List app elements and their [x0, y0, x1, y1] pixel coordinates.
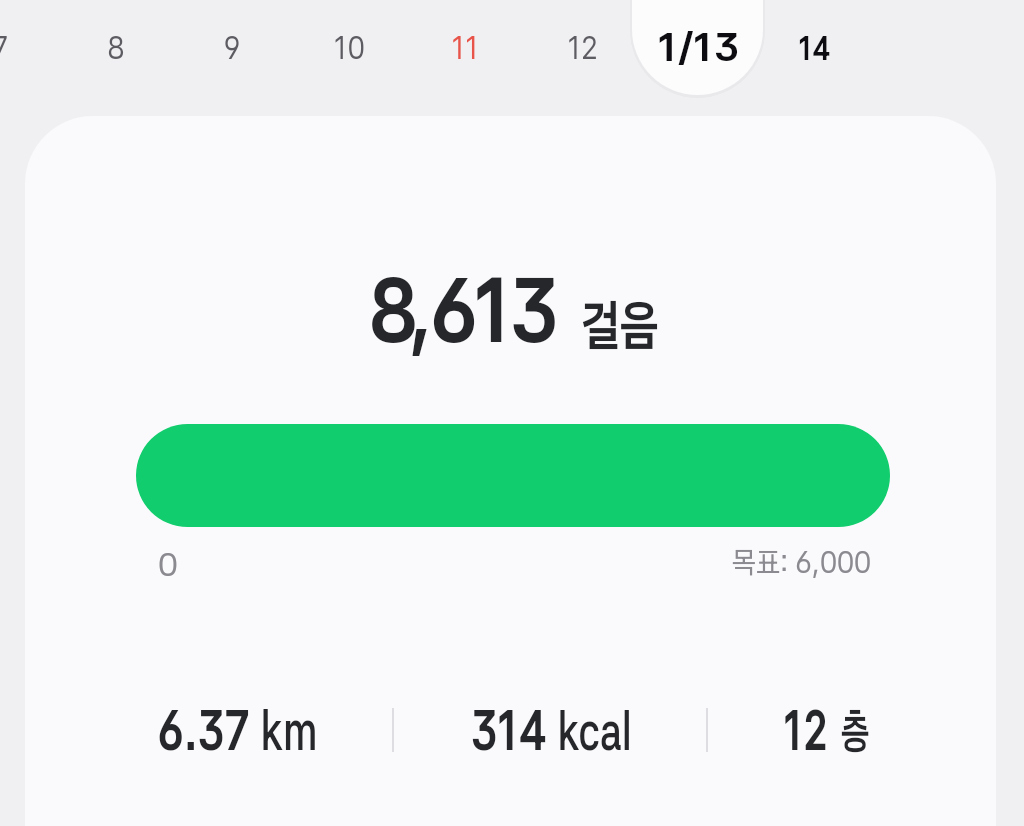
button[interactable]: 314 [392, 678, 707, 782]
staticText: 10 [334, 28, 365, 67]
staticText: kcal [557, 697, 632, 764]
staticText: 12 [784, 696, 827, 764]
staticText: 7 [0, 28, 8, 67]
staticText: 6.37 [157, 697, 249, 764]
staticText: km [260, 696, 318, 764]
staticText: 층 [841, 701, 869, 759]
button[interactable]: 9 [174, 11, 290, 83]
staticText: 0 [158, 545, 178, 584]
staticText: 걸음 [581, 292, 659, 359]
button[interactable]: 8 [58, 11, 174, 83]
staticText: 9 [223, 28, 240, 67]
staticText: 11 [451, 28, 480, 67]
staticText: 12 [567, 28, 597, 67]
button[interactable]: 14 [756, 12, 872, 84]
staticText: 1/13 [658, 23, 739, 71]
staticText: 314 [470, 697, 546, 764]
button[interactable]: Step progress, goal reached [136, 424, 890, 527]
button[interactable]: 12 [706, 678, 996, 782]
button[interactable]: Selected day [632, 0, 763, 95]
staticText: 8,613 [368, 256, 555, 363]
button[interactable]: 12 [524, 11, 640, 83]
staticText: 14 [799, 29, 830, 68]
button[interactable]: 7 [0, 11, 58, 83]
button[interactable]: 6.37 [25, 678, 392, 782]
button[interactable]: 1/13 [640, 11, 756, 83]
staticText: 목표: 6,000 [732, 543, 871, 580]
button[interactable]: 10 [291, 11, 407, 83]
button[interactable]: 11 [407, 11, 523, 83]
staticText: 8 [107, 28, 124, 67]
